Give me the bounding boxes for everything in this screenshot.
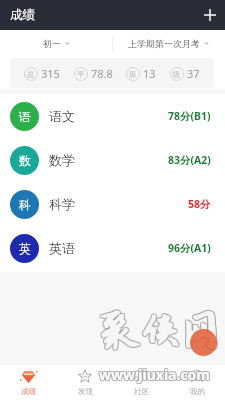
- staticText: 成绩: [10, 7, 35, 23]
- staticText: www.jiuxia.com: [99, 365, 211, 384]
- staticText: 英: [19, 241, 31, 256]
- staticText: 初一: [43, 38, 61, 49]
- staticText: www.jiuxia.com: [100, 365, 212, 384]
- button[interactable]: 科: [0, 182, 225, 226]
- staticText: www.jiuxia.com: [98, 365, 210, 384]
- staticText: 班: [129, 70, 137, 79]
- button[interactable]: 英: [0, 226, 225, 270]
- staticText: 聚侠网: [101, 307, 223, 352]
- staticText: www.jiuxia.com: [98, 364, 210, 383]
- staticText: 我的: [190, 387, 205, 396]
- staticText: 聚侠网: [100, 308, 222, 353]
- staticText: 96分(A1): [168, 241, 211, 255]
- staticText: 科: [19, 197, 31, 212]
- staticText: 315: [41, 66, 60, 81]
- staticText: 成绩: [21, 387, 36, 396]
- staticText: 78分(B1): [168, 109, 211, 123]
- staticText: www.jiuxia.com: [99, 366, 211, 385]
- staticText: 社区: [134, 387, 149, 396]
- button[interactable]: 社区: [113, 365, 169, 400]
- staticText: 聚侠网: [99, 308, 221, 353]
- staticText: 58分: [188, 197, 211, 211]
- staticText: 级: [173, 70, 181, 79]
- staticText: 78.8: [91, 66, 113, 81]
- staticText: 平: [77, 70, 85, 79]
- staticText: 聚侠网: [99, 307, 221, 352]
- staticText: www.jiuxia.com: [98, 366, 210, 385]
- button[interactable]: 上学期第一次月考: [112, 30, 225, 57]
- staticText: 37: [187, 66, 200, 81]
- staticText: 13: [143, 66, 156, 81]
- staticText: www.jiuxia.com: [100, 366, 212, 385]
- staticText: 语: [19, 109, 31, 124]
- button[interactable]: 发现: [57, 365, 113, 400]
- button[interactable]: 语: [0, 94, 225, 138]
- staticText: 发现: [78, 387, 93, 396]
- button[interactable]: 数: [0, 138, 225, 182]
- button[interactable]: 初一: [0, 30, 112, 57]
- staticText: 科学: [49, 196, 75, 212]
- staticText: 数学: [49, 152, 75, 168]
- staticText: www.jiuxia.com: [99, 364, 211, 383]
- staticText: 英语: [49, 240, 75, 256]
- staticText: 聚侠网: [101, 309, 223, 354]
- staticText: www.jiuxia.com: [100, 364, 212, 383]
- button[interactable]: 我的: [169, 365, 225, 400]
- staticText: 聚侠网: [100, 307, 222, 352]
- staticText: 聚侠网: [100, 309, 222, 354]
- button[interactable]: 成绩: [0, 365, 57, 400]
- staticText: 总: [27, 70, 35, 79]
- staticText: 数: [19, 153, 31, 168]
- staticText: 聚侠网: [101, 308, 223, 353]
- staticText: 聚侠网: [99, 309, 221, 354]
- button[interactable]: Add: [195, 0, 225, 30]
- staticText: 语文: [49, 108, 75, 124]
- staticText: 83分(A2): [168, 153, 211, 167]
- staticText: 上学期第一次月考: [128, 38, 200, 49]
